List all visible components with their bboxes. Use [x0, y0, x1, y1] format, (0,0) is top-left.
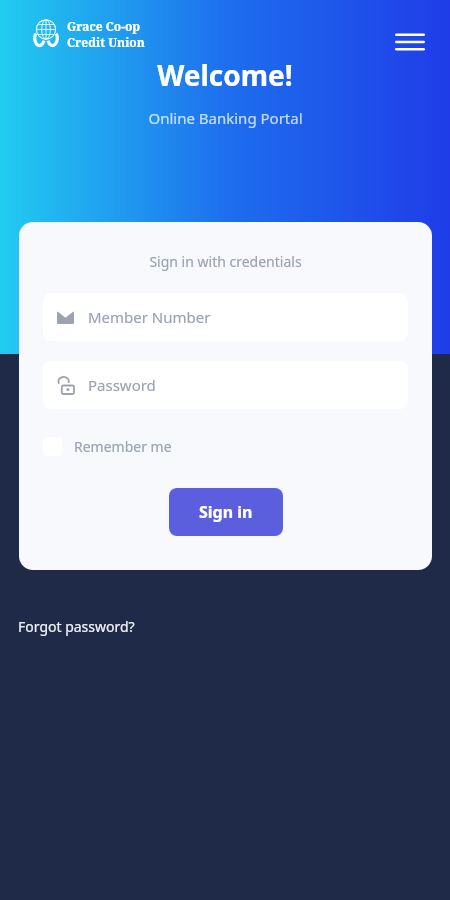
button[interactable]: Menu [388, 20, 432, 64]
staticText: Credit Union [67, 34, 145, 50]
staticText: Sign in with credentials [43, 252, 408, 271]
button[interactable]: Forgot password? [12, 613, 141, 640]
staticText: Welcome! [157, 56, 293, 94]
staticText: Online Banking Portal [148, 108, 303, 128]
staticText: Forgot password? [18, 617, 135, 636]
staticText: Remember me [74, 437, 172, 456]
staticText: Grace Co-op [67, 18, 141, 34]
button[interactable]: Password [43, 361, 408, 409]
button[interactable]: Sign in [169, 488, 283, 536]
staticText: Password [88, 375, 156, 395]
button[interactable]: Remember me [43, 433, 172, 460]
staticText: Member Number [88, 307, 211, 327]
button[interactable]: Member Number [43, 293, 408, 341]
button[interactable]: Grace Co-op Credit Union home [28, 16, 147, 52]
staticText: Sign in [199, 501, 253, 523]
